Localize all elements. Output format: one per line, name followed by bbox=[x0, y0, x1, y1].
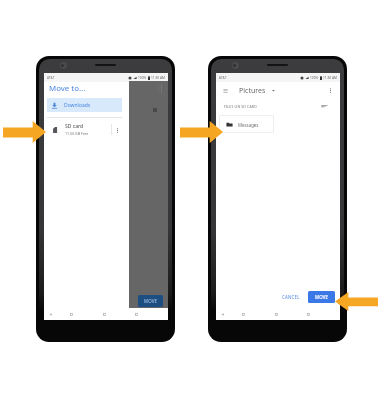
button[interactable]: Downloads bbox=[47, 98, 122, 112]
staticText: 100% bbox=[138, 76, 147, 80]
staticText: 11:30 AM bbox=[151, 76, 165, 80]
button[interactable]: More options bbox=[325, 85, 336, 96]
staticText: Move to... bbox=[49, 83, 86, 94]
button[interactable]: More options bbox=[112, 125, 122, 135]
button[interactable]: Split screen bbox=[131, 309, 142, 320]
staticText: 11:30 AM bbox=[323, 76, 337, 80]
staticText: AT&T bbox=[47, 76, 55, 80]
button[interactable]: MOVE bbox=[308, 291, 335, 303]
button[interactable]: Recents bbox=[99, 309, 110, 320]
button[interactable]: SD card bbox=[47, 121, 122, 138]
staticText: MOVE bbox=[315, 294, 329, 300]
button[interactable]: Home bbox=[238, 309, 249, 320]
button[interactable]: Home bbox=[66, 309, 77, 320]
button[interactable]: Recents bbox=[271, 309, 282, 320]
staticText: AT&T bbox=[219, 76, 227, 80]
button[interactable]: CANCEL bbox=[279, 292, 303, 302]
button[interactable]: Messages bbox=[219, 115, 274, 133]
button[interactable]: Back bbox=[45, 309, 56, 320]
staticText: FILES ON SD CARD bbox=[224, 104, 257, 109]
staticText: MOVE bbox=[144, 298, 158, 304]
button[interactable]: MOVE bbox=[138, 295, 163, 307]
staticText: Downloads bbox=[64, 102, 91, 109]
staticText: 100% bbox=[310, 76, 319, 80]
button[interactable]: Back bbox=[217, 309, 228, 320]
staticText: Pictures bbox=[239, 86, 266, 96]
staticText: Messages bbox=[238, 122, 259, 128]
staticText: SD card bbox=[65, 123, 84, 130]
button[interactable]: Split screen bbox=[303, 309, 314, 320]
button[interactable]: Menu bbox=[220, 85, 231, 96]
staticText: CANCEL bbox=[282, 294, 300, 300]
staticText: 11.56 GB Free bbox=[65, 131, 89, 136]
